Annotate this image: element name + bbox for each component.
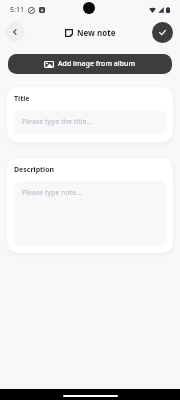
staticText: New note: [77, 27, 116, 38]
staticText: Please type the title...: [22, 117, 93, 127]
staticText: 5:11: [10, 5, 24, 15]
staticText: Description: [14, 165, 55, 175]
button[interactable]: Save note: [152, 22, 173, 43]
button[interactable]: Please type the title...: [14, 110, 166, 135]
button[interactable]: Please type note...: [14, 181, 166, 246]
staticText: Please type note...: [22, 188, 82, 198]
staticText: Add image from album: [58, 59, 136, 69]
button[interactable]: Back: [5, 22, 25, 42]
staticText: Title: [14, 94, 30, 104]
button[interactable]: Add image from album: [8, 54, 172, 74]
